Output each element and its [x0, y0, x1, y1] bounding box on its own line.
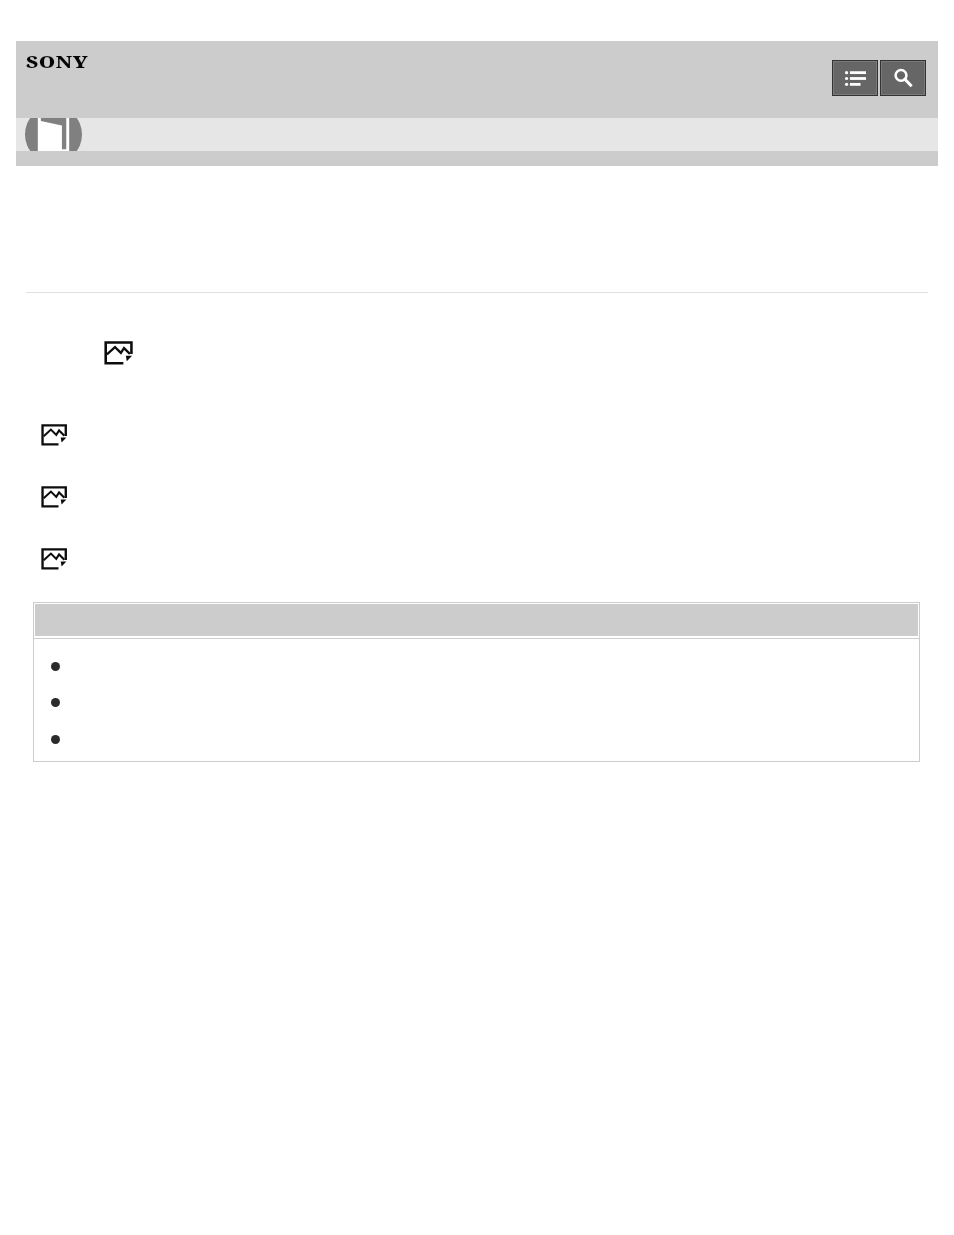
- staticText: SONY: [26, 51, 89, 73]
- button[interactable]: Related topic 2: [43, 695, 910, 710]
- button[interactable]: Related topic 3: [43, 732, 910, 747]
- button[interactable]: Related topic 1: [43, 659, 910, 674]
- button[interactable]: Table of contents: [832, 60, 878, 96]
- button[interactable]: Search: [880, 60, 926, 96]
- button[interactable]: Help Guide: [25, 118, 82, 139]
